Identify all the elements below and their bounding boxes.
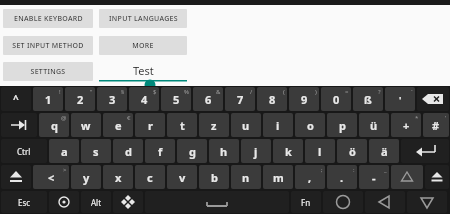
- button[interactable]: Up: [391, 165, 423, 189]
- button[interactable]: 3: [97, 87, 127, 111]
- button[interactable]: l: [305, 139, 335, 163]
- staticText: Ctrl: [17, 146, 31, 157]
- button[interactable]: Shift: [1, 165, 31, 189]
- button[interactable]: n: [231, 165, 261, 189]
- button[interactable]: 5: [161, 87, 191, 111]
- staticText: +: [403, 118, 410, 133]
- button[interactable]: Backspace: [417, 87, 449, 111]
- button[interactable]: ü: [359, 113, 389, 137]
- button[interactable]: s: [81, 139, 111, 163]
- button[interactable]: MORE: [99, 36, 187, 55]
- button[interactable]: 2: [65, 87, 95, 111]
- staticText: i: [276, 118, 280, 133]
- button[interactable]: INPUT LANGUAGES: [99, 9, 187, 28]
- staticText: 1: [45, 92, 52, 107]
- button[interactable]: h: [209, 139, 239, 163]
- button[interactable]: 4: [129, 87, 159, 111]
- button[interactable]: f: [145, 139, 175, 163]
- button[interactable]: ENABLE KEYBOARD: [3, 9, 93, 28]
- button[interactable]: Home: [323, 191, 363, 213]
- staticText: @: [61, 114, 67, 122]
- button[interactable]: o: [295, 113, 325, 137]
- staticText: t: [180, 118, 185, 133]
- button[interactable]: ä: [369, 139, 399, 163]
- staticText: m: [273, 170, 284, 185]
- button[interactable]: 1: [33, 87, 63, 111]
- staticText: v: [179, 170, 186, 185]
- button[interactable]: e: [103, 113, 133, 137]
- staticText: ;: [321, 166, 323, 174]
- button[interactable]: Settings: [49, 191, 79, 213]
- staticText: 4: [141, 92, 148, 107]
- button[interactable]: 9: [289, 87, 319, 111]
- staticText: ö: [349, 144, 356, 159]
- button[interactable]: a: [49, 139, 79, 163]
- staticText: ä: [381, 144, 388, 159]
- button[interactable]: v: [167, 165, 197, 189]
- button[interactable]: Fn: [291, 191, 321, 213]
- button[interactable]: ,: [295, 165, 325, 189]
- button[interactable]: Space: [145, 191, 289, 213]
- button[interactable]: w: [71, 113, 101, 137]
- staticText: d: [125, 144, 132, 159]
- button[interactable]: g: [177, 139, 207, 163]
- staticText: INPUT LANGUAGES: [109, 14, 178, 24]
- button[interactable]: .: [327, 165, 357, 189]
- button[interactable]: j: [241, 139, 271, 163]
- button[interactable]: 0: [321, 87, 351, 111]
- button[interactable]: b: [199, 165, 229, 189]
- staticText: €: [127, 114, 131, 122]
- button[interactable]: Back: [365, 191, 405, 213]
- button[interactable]: SETTINGS: [3, 62, 93, 81]
- button[interactable]: m: [263, 165, 293, 189]
- staticText: w: [81, 118, 91, 133]
- button[interactable]: x: [103, 165, 133, 189]
- button[interactable]: Shift: [425, 165, 449, 189]
- button[interactable]: +: [391, 113, 421, 137]
- button[interactable]: Alt: [81, 191, 111, 213]
- button[interactable]: q: [39, 113, 69, 137]
- staticText: !: [59, 88, 61, 96]
- staticText: x: [115, 170, 122, 185]
- button[interactable]: d: [113, 139, 143, 163]
- button[interactable]: ß: [353, 87, 383, 111]
- staticText: f: [158, 144, 163, 159]
- staticText: :: [353, 166, 355, 174]
- staticText: 0: [333, 92, 340, 107]
- button[interactable]: z: [199, 113, 229, 137]
- button[interactable]: Esc: [1, 191, 47, 213]
- button[interactable]: 6: [193, 87, 223, 111]
- button[interactable]: Enter: [401, 139, 449, 163]
- button[interactable]: Ctrl: [1, 139, 47, 163]
- button[interactable]: 7: [225, 87, 255, 111]
- staticText: 7: [237, 92, 244, 107]
- staticText: 9: [301, 92, 308, 107]
- button[interactable]: ^: [1, 87, 31, 111]
- button[interactable]: u: [231, 113, 261, 137]
- button[interactable]: 8: [257, 87, 287, 111]
- staticText: Esc: [18, 197, 31, 208]
- button[interactable]: SET INPUT METHOD: [3, 36, 93, 55]
- button[interactable]: t: [167, 113, 197, 137]
- button[interactable]: #: [423, 113, 449, 137]
- button[interactable]: <: [33, 165, 69, 189]
- button[interactable]: -: [359, 165, 389, 189]
- staticText: ?: [378, 88, 381, 96]
- button[interactable]: i: [263, 113, 293, 137]
- button[interactable]: Down: [407, 191, 447, 213]
- button[interactable]: Tab: [1, 113, 37, 137]
- button[interactable]: k: [273, 139, 303, 163]
- button[interactable]: r: [135, 113, 165, 137]
- staticText: $: [153, 88, 157, 96]
- button[interactable]: y: [71, 165, 101, 189]
- staticText: o: [307, 118, 314, 133]
- button[interactable]: ö: [337, 139, 367, 163]
- staticText: 2: [77, 92, 84, 107]
- button[interactable]: Move: [113, 191, 143, 213]
- staticText: n: [242, 170, 250, 185]
- button[interactable]: c: [135, 165, 165, 189]
- button[interactable]: ': [385, 87, 415, 111]
- staticText: >: [63, 166, 67, 174]
- button[interactable]: Test: [99, 62, 187, 82]
- button[interactable]: p: [327, 113, 357, 137]
